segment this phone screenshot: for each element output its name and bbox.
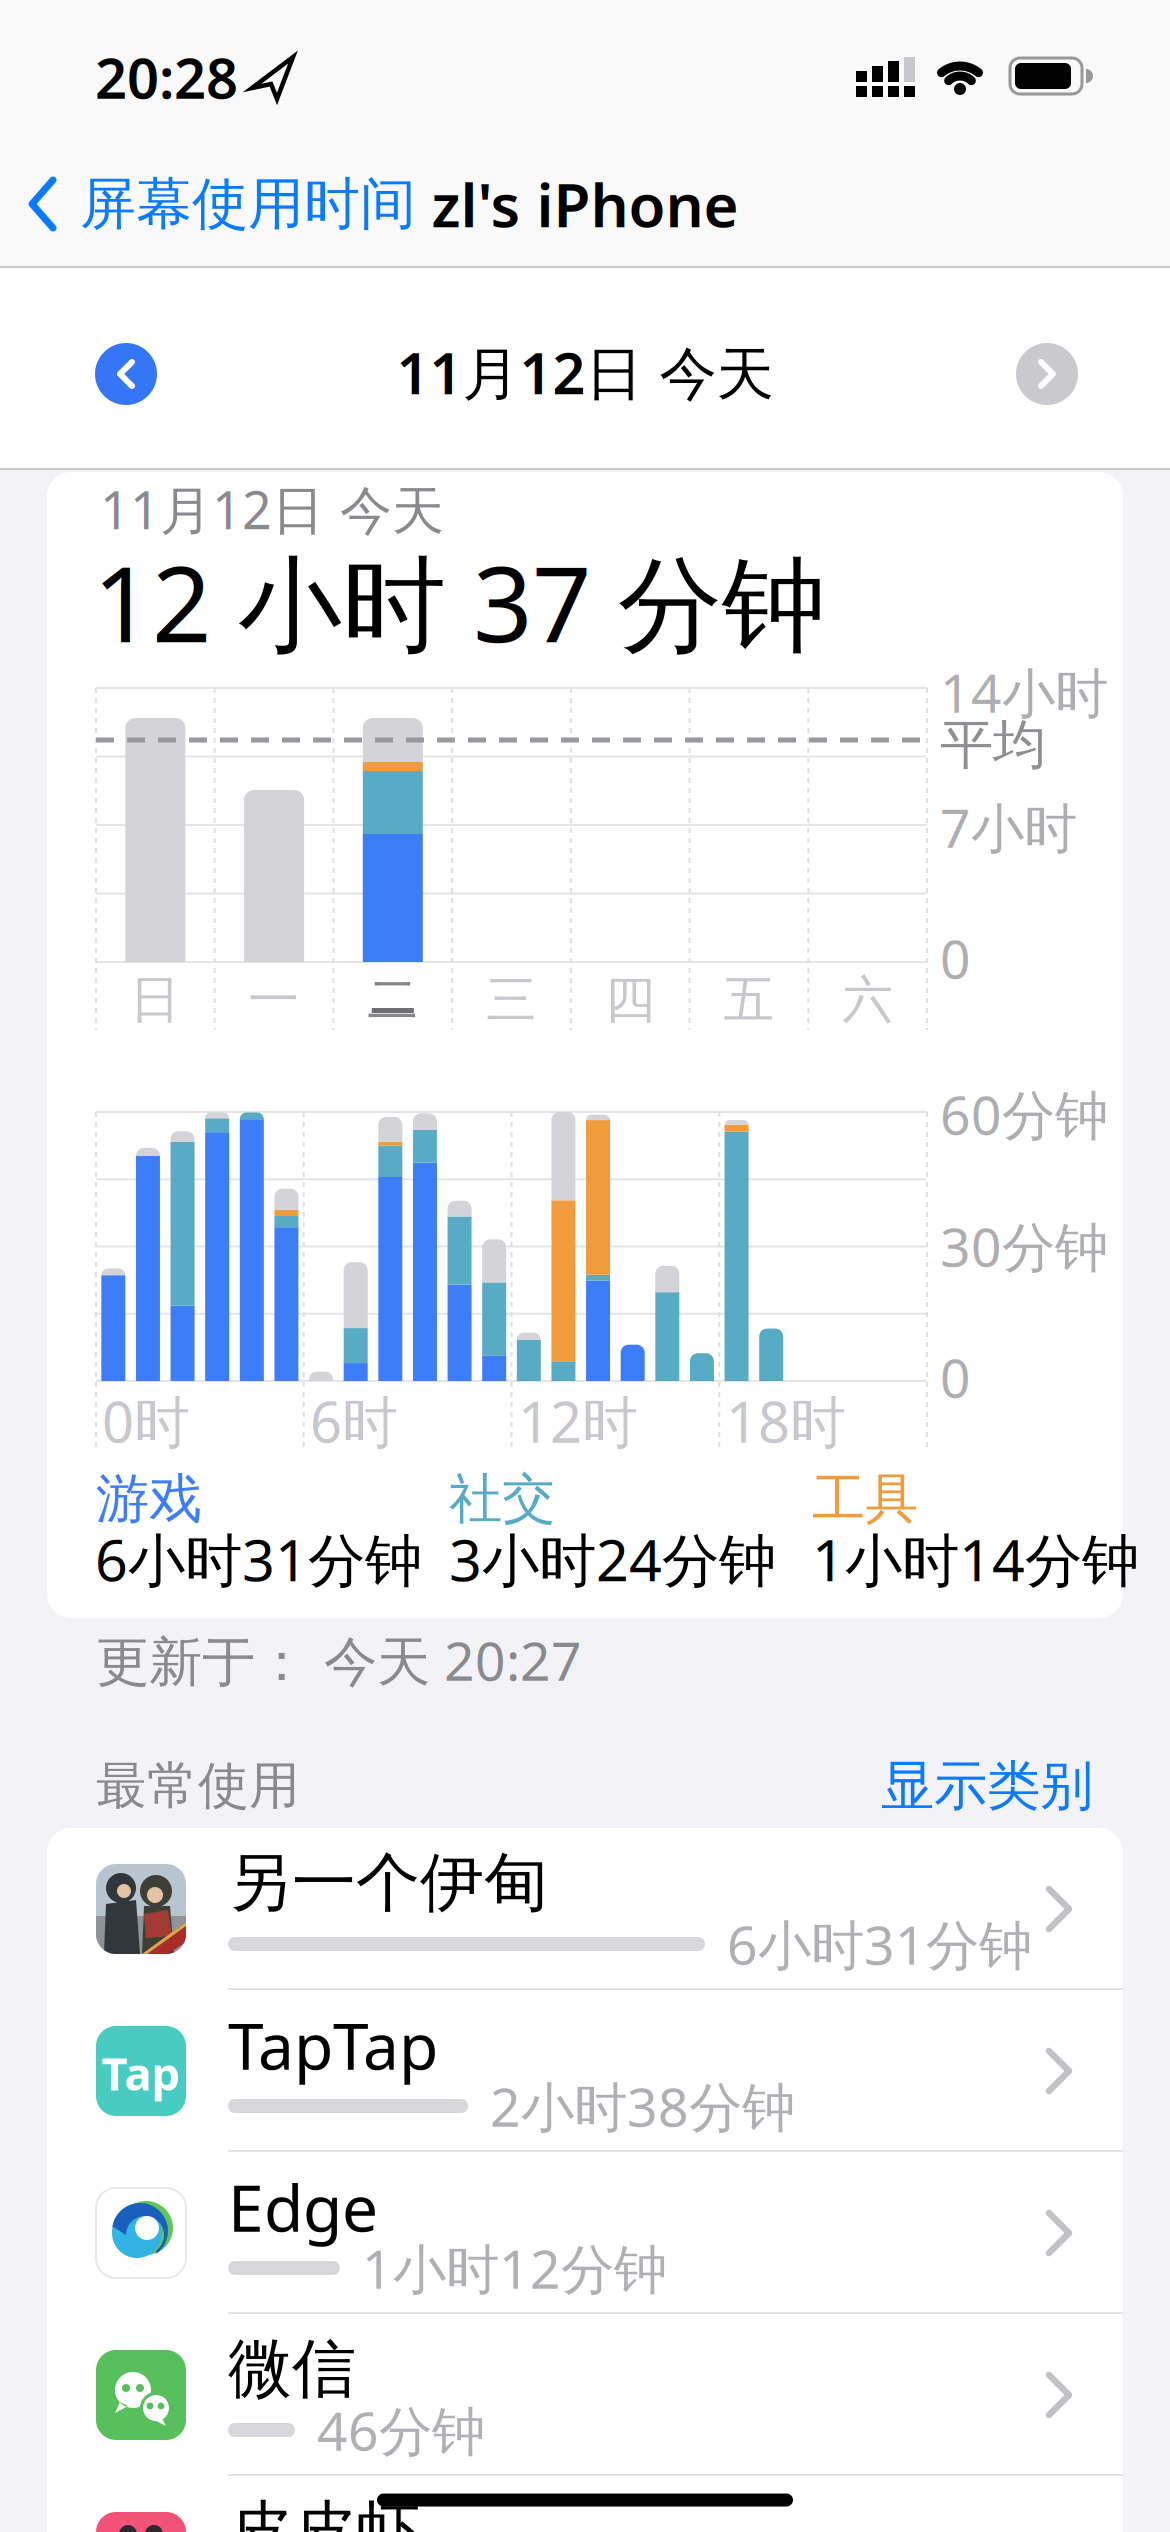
staticText: 7小时 [940,792,1077,862]
staticText: 平均 [940,712,1046,778]
staticText: 30分钟 [940,1211,1108,1281]
staticText: 一 [249,969,300,1031]
staticText: 6小时31分钟 [727,1909,1032,1979]
staticText: 46分钟 [317,2395,485,2465]
staticText: 最常使用 [96,1755,300,1817]
staticText: 二 [367,969,418,1031]
staticText: 0 [940,1342,971,1412]
staticText: zl's iPhone [431,164,738,244]
button[interactable]: 后一天 [1016,343,1078,405]
staticText: 2小时38分钟 [490,2071,795,2141]
button[interactable]: 屏幕使用时间 [28,159,528,249]
staticText: 更新于： 今天 20:27 [96,1625,582,1695]
staticText: 60分钟 [940,1079,1108,1149]
button[interactable]: 皮皮虾 [47,2476,1123,2532]
staticText: 14小时 [940,657,1108,727]
staticText: 1小时14分钟 [812,1521,1139,1597]
staticText: 另一个伊甸 [228,1844,548,1922]
staticText: 日 [130,969,181,1031]
staticText: 0时 [102,1384,190,1458]
staticText: 皮皮虾 [228,2492,420,2532]
staticText: 五 [723,969,774,1031]
staticText: 11月12日 今天 [100,474,444,544]
staticText: 18时 [726,1384,846,1458]
button[interactable]: 显示类别 [881,1753,1093,1819]
staticText: 社交 [449,1466,555,1532]
button[interactable]: 前一天 [95,343,157,405]
staticText: 三 [486,969,537,1031]
staticText: 0 [940,923,971,993]
staticText: 20:28 [95,40,238,114]
staticText: 12时 [518,1384,638,1458]
button[interactable]: 另一个伊甸 [47,1828,1123,1990]
staticText: 四 [605,969,656,1031]
staticText: 11月12日 今天 [396,334,773,410]
staticText: TapTap [228,2002,438,2087]
staticText: 3小时24分钟 [449,1521,776,1597]
button[interactable]: Edge [47,2152,1123,2314]
staticText: 1小时12分钟 [362,2233,667,2303]
staticText: 微信 [228,2330,356,2408]
staticText: 游戏 [96,1466,202,1532]
button[interactable]: Tap [47,1990,1123,2152]
staticText: Edge [228,2164,378,2249]
staticText: 六 [842,969,893,1031]
staticText: 6时 [310,1384,398,1458]
button[interactable]: 微信 [47,2314,1123,2476]
staticText: 12 小时 37 分钟 [93,533,826,671]
staticText: 6小时31分钟 [95,1521,422,1597]
staticText: 屏幕使用时间 [80,170,416,238]
staticText: 工具 [812,1466,918,1532]
staticText: 显示类别 [881,1753,1093,1819]
staticText: Tap [101,2043,180,2103]
